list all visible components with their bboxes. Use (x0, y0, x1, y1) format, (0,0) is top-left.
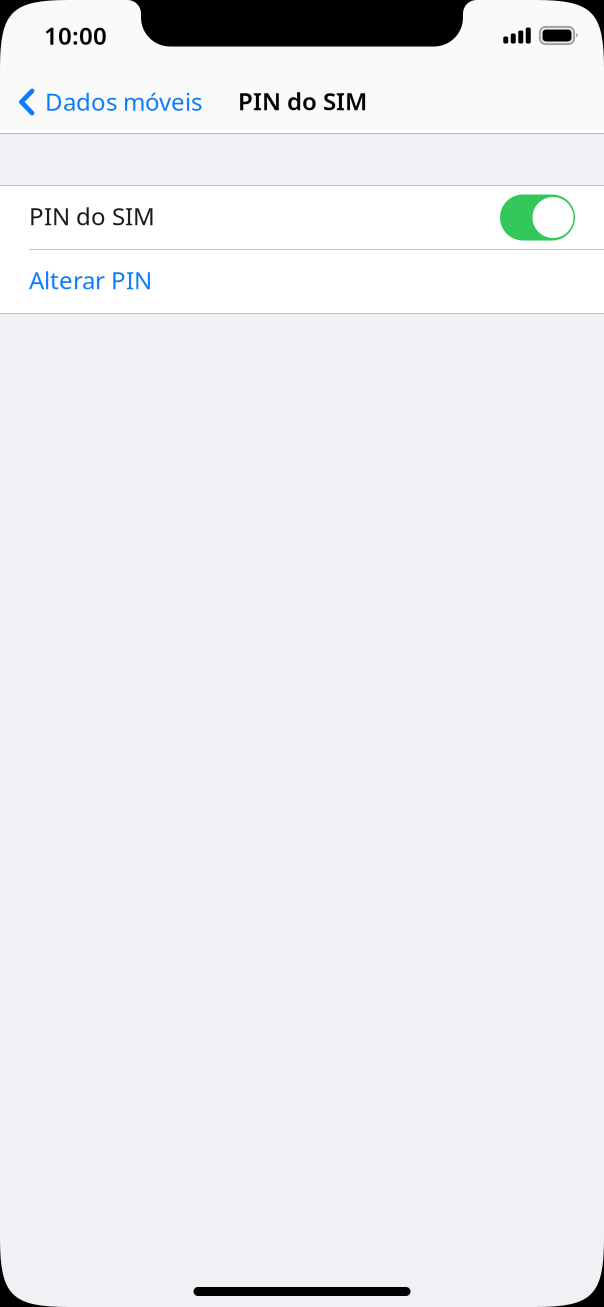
staticText: 10:00 (44, 20, 107, 51)
staticText: Alterar PIN (29, 264, 152, 296)
button[interactable]: PIN do SIM (500, 194, 575, 240)
staticText: PIN do SIM (29, 200, 155, 232)
staticText: Dados móveis (45, 86, 202, 117)
staticText: PIN do SIM (238, 85, 367, 117)
button[interactable]: Alterar PIN (0, 250, 604, 313)
button[interactable]: Dados móveis (0, 78, 202, 126)
